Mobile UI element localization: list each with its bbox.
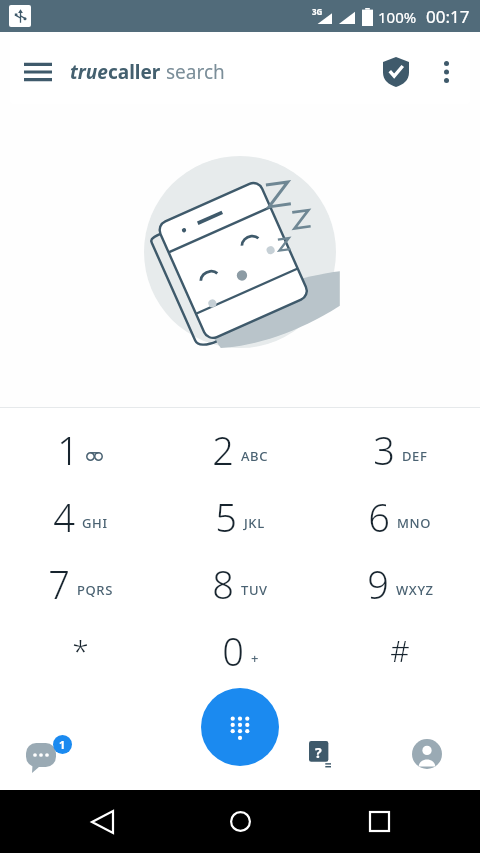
staticText: 3 <box>373 424 395 476</box>
staticText: + <box>251 649 259 667</box>
staticText: ABC <box>241 447 269 465</box>
staticText: DEF <box>402 447 428 465</box>
staticText: JKL <box>244 514 265 532</box>
staticText: 8 <box>212 558 234 610</box>
button[interactable]: * <box>0 617 160 684</box>
button[interactable]: 0 <box>160 617 320 684</box>
button[interactable]: Dialpad <box>201 688 279 766</box>
button[interactable]: 9 <box>320 550 480 617</box>
button[interactable]: 6 <box>320 483 480 550</box>
button[interactable]: Unknown contact <box>266 718 373 790</box>
button[interactable]: Profile <box>373 718 480 790</box>
button[interactable]: More options <box>422 48 470 96</box>
button[interactable]: 2 <box>160 416 320 483</box>
button[interactable]: 3 <box>320 416 480 483</box>
staticText: 00:17 <box>426 5 470 28</box>
staticText: true <box>70 59 108 85</box>
staticText: WXYZ <box>396 581 434 599</box>
button[interactable]: Protection <box>370 46 422 98</box>
button[interactable]: Menu <box>10 40 470 104</box>
staticText: 1 <box>57 424 79 476</box>
staticText: 9 <box>367 558 389 610</box>
staticText: 3G <box>312 6 323 17</box>
staticText: 5 <box>215 491 237 543</box>
staticText: 7 <box>48 558 70 610</box>
staticText: 4 <box>53 491 75 543</box>
staticText: 1 <box>59 737 66 752</box>
button[interactable]: # <box>320 617 480 684</box>
staticText: MNO <box>397 514 432 532</box>
button[interactable]: 7 <box>0 550 160 617</box>
staticText: ? <box>315 743 322 762</box>
button[interactable]: 4 <box>0 483 160 550</box>
staticText: 6 <box>368 491 390 543</box>
button[interactable]: Home <box>203 790 277 853</box>
button[interactable]: Recents <box>342 790 416 853</box>
staticText: PQRS <box>77 581 113 599</box>
staticText: * <box>72 630 89 671</box>
staticText: GHI <box>82 514 108 532</box>
button[interactable]: 5 <box>160 483 320 550</box>
button[interactable]: Menu <box>10 44 66 100</box>
staticText: caller <box>108 59 161 85</box>
staticText: TUV <box>241 581 268 599</box>
staticText: 2 <box>212 424 234 476</box>
staticText: search <box>166 59 225 85</box>
staticText: 0 <box>222 625 244 677</box>
button[interactable]: 1 <box>0 416 160 483</box>
button[interactable]: 8 <box>160 550 320 617</box>
button[interactable]: Back <box>65 790 139 853</box>
staticText: 100% <box>378 7 417 27</box>
staticText: # <box>390 630 410 671</box>
button[interactable]: Messages <box>0 718 106 790</box>
